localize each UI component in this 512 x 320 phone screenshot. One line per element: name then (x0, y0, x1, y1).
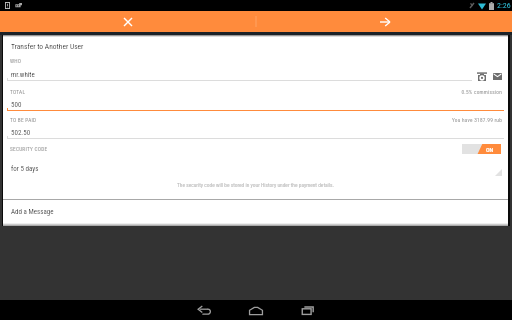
staticText: mr.white (11, 71, 35, 79)
staticText: You have 3187.99 rub (3, 117, 502, 123)
staticText: 502.50 (11, 129, 31, 137)
staticText: SECURITY CODE (10, 146, 48, 152)
staticText: WHO (10, 58, 22, 64)
button[interactable]: Add a Message (3, 200, 508, 226)
staticText: Add a Message (11, 208, 54, 216)
button[interactable]: Scan contact (477, 72, 487, 81)
staticText: 2:26 (497, 1, 511, 10)
staticText: for 5 days (11, 165, 39, 173)
button[interactable]: Cancel (0, 11, 255, 32)
staticText: 0.5% commission (3, 89, 502, 95)
staticText: Transfer to Another User (11, 42, 84, 51)
button[interactable]: Home (236, 300, 276, 320)
button[interactable]: Security code on (462, 144, 501, 154)
staticText: TOTAL (10, 89, 26, 95)
button[interactable]: Done (257, 11, 512, 32)
staticText: The security code will be stored in your… (3, 182, 508, 188)
staticText: 500 (11, 101, 22, 109)
button[interactable]: Pick from contacts (493, 73, 502, 80)
staticText: TO BE PAID (10, 117, 37, 123)
button[interactable]: Back (184, 300, 224, 320)
button[interactable]: Recent apps (288, 300, 328, 320)
staticText: ON (486, 146, 494, 153)
